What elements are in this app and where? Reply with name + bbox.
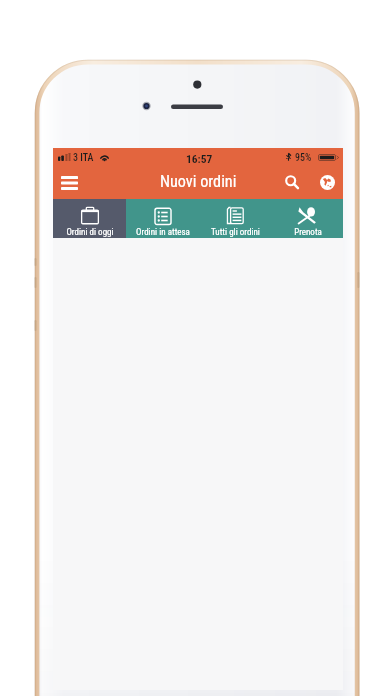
staticText: Ordini di oggi — [66, 227, 114, 238]
button[interactable]: Prenota — [272, 199, 343, 238]
staticText: Prenota — [294, 227, 322, 238]
staticText: Ordini in attesa — [136, 227, 190, 238]
staticText: 16:57 — [186, 152, 213, 165]
button[interactable]: Ordini di oggi — [53, 199, 126, 238]
button[interactable]: Search — [278, 167, 306, 198]
button[interactable]: Tutti gli ordini — [199, 199, 272, 238]
button[interactable]: Language — [311, 167, 343, 198]
staticText: Tutti gli ordini — [211, 227, 260, 238]
button[interactable]: Ordini in attesa — [126, 199, 199, 238]
staticText: 95% — [295, 152, 312, 164]
staticText: Nuovi ordini — [160, 172, 237, 191]
staticText: 3 ITA — [73, 152, 94, 164]
button[interactable]: Menu — [54, 167, 85, 198]
